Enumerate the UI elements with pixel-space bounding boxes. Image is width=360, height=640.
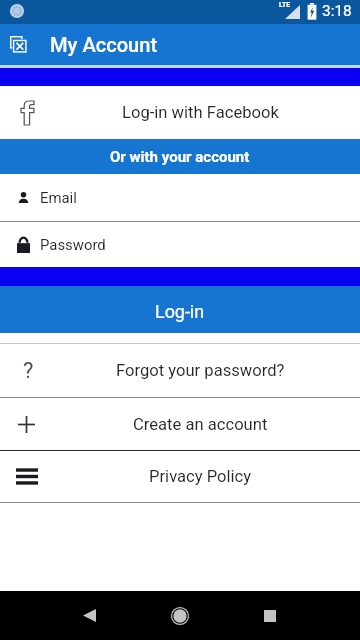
staticText: LTE	[279, 1, 291, 9]
button[interactable]: Close	[0, 24, 36, 65]
staticText: Log-in with Facebook	[122, 103, 279, 122]
button[interactable]: Password	[0, 222, 360, 267]
button[interactable]: Back	[65, 591, 113, 640]
button[interactable]: Log-in with Facebook	[0, 86, 360, 139]
staticText: Create an account	[133, 415, 268, 434]
button[interactable]: Log-in	[0, 286, 360, 333]
button[interactable]: Or with your account	[0, 139, 360, 174]
button[interactable]: Create an account	[0, 398, 360, 450]
staticText: 3:18	[322, 2, 352, 20]
staticText: My Account	[50, 33, 158, 57]
button[interactable]: Recent apps	[246, 591, 294, 640]
button[interactable]: ?	[0, 344, 360, 397]
staticText: Log-in	[155, 301, 205, 322]
staticText: Or with your account	[110, 148, 250, 166]
staticText: Password	[40, 236, 106, 253]
staticText: ?	[23, 358, 34, 384]
button[interactable]: Home	[156, 591, 204, 640]
staticText: Forgot your password?	[116, 361, 285, 380]
button[interactable]: Email	[0, 174, 360, 221]
staticText: Privacy Policy	[149, 467, 252, 486]
button[interactable]: Privacy Policy	[0, 451, 360, 502]
staticText: Email	[40, 189, 77, 206]
